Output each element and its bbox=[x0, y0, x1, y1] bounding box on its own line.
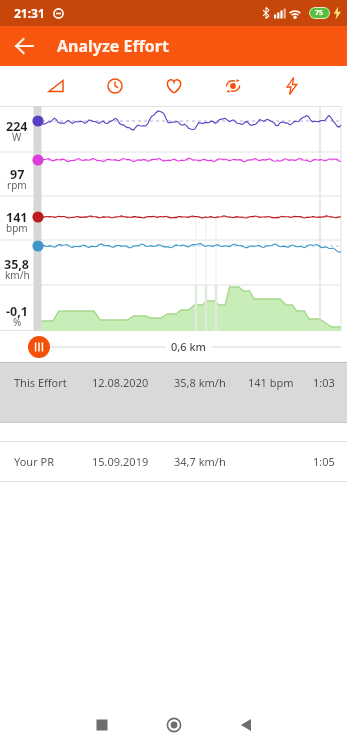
staticText: 15.09.2019 bbox=[92, 454, 149, 469]
button[interactable] bbox=[26, 66, 85, 106]
staticText: Analyze Effort bbox=[57, 35, 169, 57]
staticText: W bbox=[12, 130, 22, 144]
button[interactable] bbox=[150, 700, 198, 750]
staticText: 97 bbox=[10, 166, 25, 183]
button[interactable] bbox=[85, 66, 144, 106]
staticText: 224 bbox=[6, 118, 28, 135]
staticText: 12.08.2020 bbox=[92, 375, 149, 390]
staticText: 75 bbox=[315, 8, 324, 18]
button[interactable]: This Effort bbox=[0, 362, 347, 423]
staticText: 1:03 bbox=[313, 375, 335, 390]
button[interactable] bbox=[144, 66, 203, 106]
staticText: Your PR bbox=[14, 454, 55, 469]
staticText: bpm bbox=[6, 221, 28, 235]
staticText: 35,8 km/h bbox=[174, 375, 226, 390]
staticText: 1:05 bbox=[313, 454, 335, 469]
staticText: 141 bbox=[6, 209, 28, 226]
staticText: % bbox=[13, 315, 22, 329]
staticText: km/h bbox=[5, 268, 30, 282]
staticText: 34,7 km/h bbox=[174, 454, 226, 469]
staticText: 35,8 bbox=[4, 256, 30, 273]
staticText: rpm bbox=[7, 178, 27, 192]
button[interactable] bbox=[203, 66, 262, 106]
button[interactable] bbox=[78, 700, 126, 750]
button[interactable] bbox=[262, 66, 321, 106]
staticText: 21:31 bbox=[14, 5, 45, 21]
staticText: 141 bpm bbox=[248, 375, 294, 390]
button[interactable]: Your PR bbox=[0, 441, 347, 482]
staticText: 0,6 km bbox=[171, 339, 207, 354]
button[interactable] bbox=[8, 30, 40, 62]
staticText: -0,1 bbox=[6, 303, 28, 320]
button[interactable] bbox=[222, 700, 270, 750]
staticText: This Effort bbox=[14, 375, 67, 390]
